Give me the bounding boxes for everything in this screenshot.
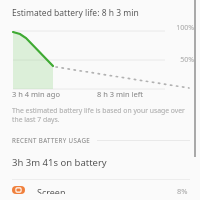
staticText: Screen: [37, 186, 66, 194]
staticText: 100%: [176, 23, 194, 33]
staticText: 3h 3m 41s on battery: [12, 156, 107, 169]
button[interactable]: 3h 3m 41s on battery: [0, 155, 200, 170]
other: Screen: [12, 186, 25, 194]
staticText: 8 h 3 min left: [97, 89, 144, 99]
staticText: The estimated battery life is based on y…: [12, 106, 189, 124]
staticText: RECENT BATTERY USAGE: [12, 136, 91, 144]
staticText: Estimated battery life: 8 h 3 min: [12, 7, 139, 19]
staticText: 50%: [180, 55, 194, 65]
staticText: 0%: [184, 87, 194, 89]
staticText: 3 h 4 min ago: [12, 89, 60, 99]
button[interactable]: Screen: [0, 180, 200, 200]
staticText: 8%: [177, 186, 188, 194]
